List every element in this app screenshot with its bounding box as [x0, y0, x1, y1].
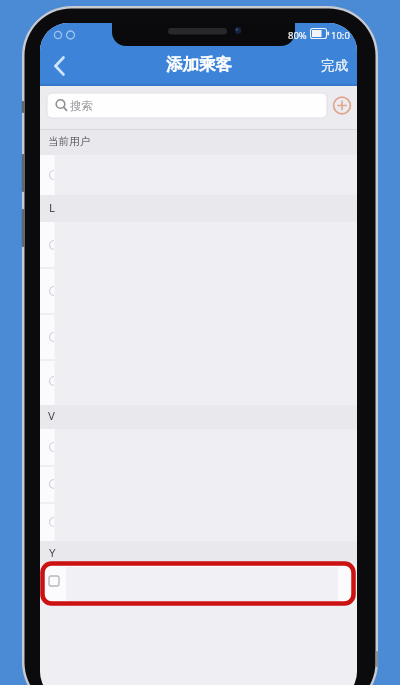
button[interactable] — [44, 565, 353, 602]
staticText: Y — [49, 545, 56, 561]
button[interactable]: 搜索 — [47, 93, 327, 118]
button[interactable]: 完成 — [321, 57, 348, 74]
staticText: 搜索 — [70, 99, 93, 113]
button[interactable] — [332, 95, 353, 116]
staticText: V — [48, 408, 55, 424]
button[interactable] — [48, 50, 74, 82]
staticText: L — [49, 200, 56, 216]
staticText: 10:0 — [331, 29, 350, 42]
staticText: 80% — [288, 29, 307, 42]
staticText: 完成 — [321, 57, 348, 74]
staticText: 添加乘客 — [166, 54, 232, 75]
staticText: 当前用户 — [48, 135, 90, 148]
